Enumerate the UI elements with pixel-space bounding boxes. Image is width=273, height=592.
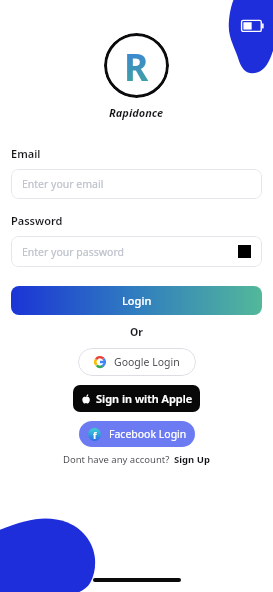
staticText: Password bbox=[11, 213, 63, 228]
staticText: Enter your password bbox=[22, 245, 124, 259]
staticText: Sign in with Apple bbox=[96, 391, 193, 406]
staticText: Google Login bbox=[114, 355, 180, 369]
staticText: Sign Up bbox=[174, 453, 210, 466]
staticText: R bbox=[124, 41, 149, 91]
staticText: Rapidonce bbox=[109, 105, 164, 120]
staticText: Dont have any account? bbox=[63, 453, 170, 466]
button[interactable]: f bbox=[79, 421, 195, 447]
button[interactable]: Enter your email bbox=[11, 169, 262, 199]
staticText: Enter your email bbox=[22, 177, 104, 191]
button[interactable]: Login bbox=[11, 286, 262, 315]
staticText: Facebook Login bbox=[109, 427, 187, 441]
staticText: Or bbox=[130, 325, 143, 339]
button[interactable]: Sign in with Apple bbox=[73, 385, 200, 412]
staticText: Email bbox=[11, 146, 41, 161]
staticText: f bbox=[93, 429, 97, 441]
button[interactable]: Google Login bbox=[78, 348, 196, 376]
staticText: Login bbox=[122, 293, 152, 308]
button[interactable]: Enter your password bbox=[11, 236, 262, 267]
button[interactable]: Sign Up bbox=[174, 453, 210, 466]
